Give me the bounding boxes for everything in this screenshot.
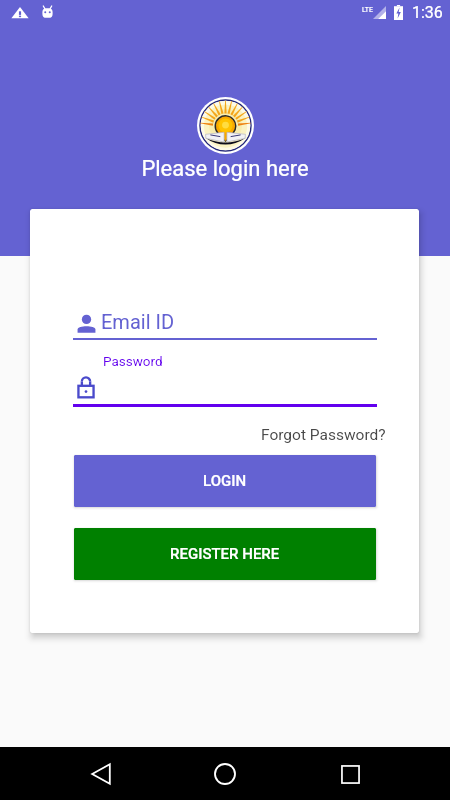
staticText: REGISTER HERE [170, 545, 280, 563]
staticText: LOGIN [203, 472, 247, 490]
staticText: LTE [362, 6, 373, 14]
button[interactable]: Password [73, 349, 377, 407]
staticText: Password [103, 353, 163, 369]
button[interactable]: Home [201, 750, 249, 798]
staticText: Email ID [101, 310, 175, 333]
button[interactable]: Forgot Password? [73, 426, 386, 444]
staticText: Forgot Password? [261, 426, 386, 444]
button[interactable]: REGISTER HERE [74, 528, 376, 580]
button[interactable]: Recents [326, 750, 374, 798]
button[interactable]: LOGIN [74, 455, 376, 507]
staticText: 1:36 [412, 3, 443, 22]
button[interactable]: Back [77, 750, 125, 798]
staticText: Please login here [0, 156, 450, 182]
button[interactable]: Email ID [73, 309, 377, 340]
